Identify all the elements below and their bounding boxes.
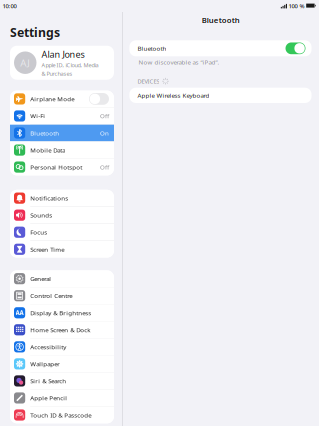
staticText: Alan Jones: [41, 48, 84, 60]
staticText: On: [100, 129, 109, 137]
staticText: Control Centre: [30, 292, 72, 300]
staticText: Touch ID & Passcode: [30, 411, 91, 419]
staticText: Accessibility: [30, 343, 66, 351]
button[interactable]: Mobile Data: [10, 142, 114, 158]
staticText: Home Screen & Dock: [30, 326, 90, 334]
button[interactable]: Apple Pencil: [10, 390, 114, 406]
button[interactable]: General: [10, 270, 114, 287]
staticText: Apple ID, iCloud, Media: [41, 61, 98, 69]
button[interactable]: Apple Wireless Keyboard: [129, 88, 311, 103]
staticText: AJ: [20, 56, 30, 69]
staticText: DEVICES: [137, 77, 159, 85]
button[interactable]: Focus: [10, 224, 114, 240]
button[interactable]: Notifications: [10, 190, 114, 206]
button[interactable]: Sounds: [10, 207, 114, 223]
button[interactable]: Control Centre: [10, 287, 114, 304]
staticText: AA: [16, 309, 24, 317]
staticText: Apple Pencil: [30, 394, 67, 402]
staticText: Off: [100, 112, 109, 120]
button[interactable]: Wallpaper: [10, 356, 114, 372]
staticText: Apple Wireless Keyboard: [137, 91, 209, 100]
staticText: Bluetooth: [30, 129, 59, 137]
staticText: Sounds: [30, 211, 52, 219]
button[interactable]: Airplane Mode: [10, 91, 114, 107]
staticText: 10:00: [2, 2, 16, 10]
button[interactable]: Home Screen & Dock: [10, 321, 114, 338]
button[interactable]: AA: [10, 304, 114, 321]
staticText: Display & Brightness: [30, 309, 91, 317]
staticText: Settings: [10, 24, 60, 41]
staticText: Mobile Data: [30, 146, 65, 154]
button[interactable]: Bluetooth: [10, 125, 114, 141]
button[interactable]: AJ: [10, 46, 114, 80]
staticText: Notifications: [30, 194, 68, 202]
button[interactable]: Bluetooth: [285, 42, 305, 54]
staticText: Bluetooth: [202, 15, 240, 25]
staticText: Personal Hotspot: [30, 163, 82, 171]
staticText: & Purchases: [41, 70, 72, 77]
button[interactable]: Touch ID & Passcode: [10, 407, 114, 423]
button[interactable]: Siri & Search: [10, 373, 114, 389]
staticText: Bluetooth: [137, 44, 166, 53]
staticText: Off: [100, 163, 109, 171]
staticText: 100 %: [288, 2, 304, 10]
staticText: Screen Time: [30, 245, 64, 253]
button[interactable]: Wi-Fi: [10, 108, 114, 124]
staticText: Wallpaper: [30, 360, 60, 368]
button[interactable]: Accessibility: [10, 338, 114, 355]
staticText: Airplane Mode: [30, 95, 74, 103]
staticText: Now discoverable as “iPad”.: [138, 58, 219, 66]
staticText: Focus: [30, 228, 47, 236]
staticText: General: [30, 274, 51, 283]
staticText: Wi-Fi: [30, 112, 45, 120]
staticText: Siri & Search: [30, 377, 66, 385]
button[interactable]: Screen Time: [10, 241, 114, 257]
button[interactable]: Personal Hotspot: [10, 159, 114, 175]
